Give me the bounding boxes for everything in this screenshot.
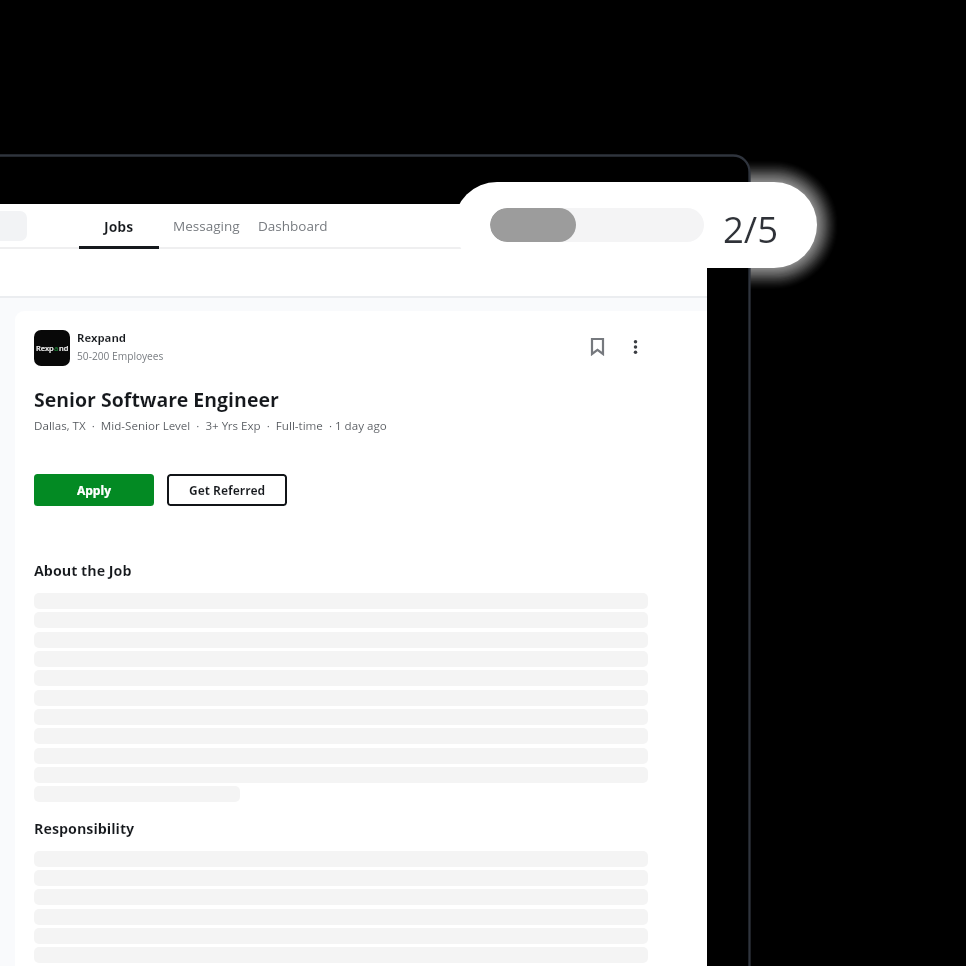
staticText: Dashboard [258, 217, 328, 235]
button[interactable]: Messaging [166, 204, 246, 296]
staticText: Apply [77, 482, 111, 498]
button[interactable]: Onboarding progress, step 2 of 5 [454, 182, 817, 268]
button[interactable]: More options [617, 329, 653, 365]
staticText: Rexpand [77, 330, 126, 345]
staticText: Dallas, TX · Mid-Senior Level · 3+ Yrs E… [34, 418, 387, 434]
staticText: a [54, 343, 59, 353]
staticText: Messaging [173, 217, 240, 235]
button[interactable]: Rexp [15, 311, 707, 966]
button[interactable]: Get Referred [167, 474, 287, 506]
button[interactable]: Apply [34, 474, 154, 506]
staticText: Senior Software Engineer [34, 386, 279, 413]
staticText: Rexp [36, 343, 54, 353]
staticText: 2/5 [723, 204, 779, 254]
staticText: Get Referred [189, 482, 266, 498]
staticText: 50-200 Employees [77, 349, 164, 363]
button[interactable]: Save job [577, 326, 617, 366]
staticText: Responsibility [34, 819, 135, 838]
staticText: About the Job [34, 561, 132, 580]
staticText: nd [59, 343, 69, 353]
button[interactable]: Jobs [79, 204, 159, 296]
staticText: Jobs [104, 217, 134, 236]
button[interactable]: Dashboard [252, 204, 333, 296]
